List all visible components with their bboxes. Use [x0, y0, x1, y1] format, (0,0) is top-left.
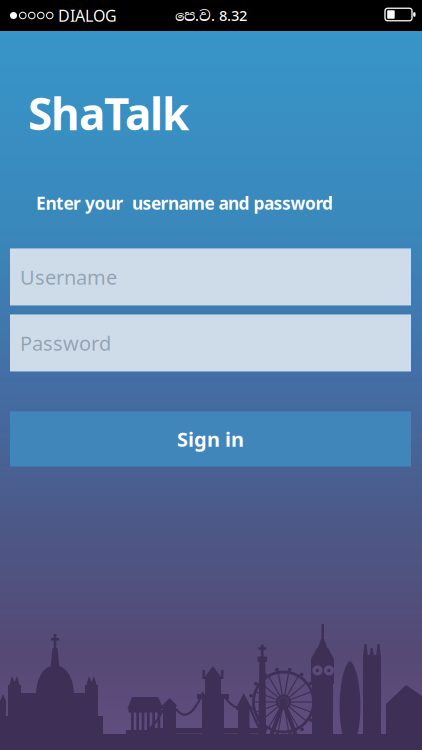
staticText: Enter your username and password [36, 191, 333, 214]
staticText: Password [20, 330, 111, 356]
staticText: පෙ.ව. 8.32 [175, 6, 247, 25]
staticText: DIALOG [58, 5, 117, 26]
button[interactable]: Password [10, 314, 411, 371]
staticText: ShaTalk [28, 84, 189, 142]
button[interactable]: Username [10, 248, 411, 305]
staticText: Sign in [177, 426, 244, 452]
staticText: Username [20, 264, 117, 290]
button[interactable]: Sign in [10, 411, 411, 466]
